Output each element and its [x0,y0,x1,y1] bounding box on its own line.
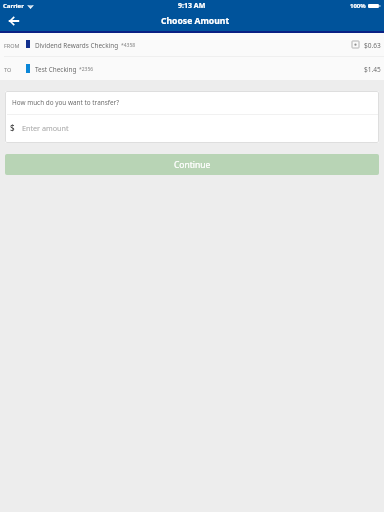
staticText: Enter amount [22,123,69,133]
staticText: $1.45 [364,65,381,74]
staticText: Choose Amount [161,15,230,27]
staticText: *2356 [79,66,94,73]
button[interactable]: $ [5,115,379,143]
staticText: How much do you want to transfer? [12,98,119,107]
staticText: FROM [4,42,20,49]
staticText: $ [10,122,15,133]
button[interactable]: TO [0,57,384,80]
staticText: 100% [350,2,366,10]
staticText: TO [4,66,12,73]
button[interactable]: Continue [5,154,379,175]
staticText: Continue [174,159,211,171]
staticText: 9:13 AM [178,1,206,11]
staticText: $0.63 [364,41,381,50]
staticText: Test Checking [35,65,77,74]
button[interactable]: FROM [0,33,384,56]
staticText: Dividend Rewards Checking [35,41,119,50]
button[interactable]: Back [2,9,26,33]
staticText: *4358 [121,42,136,49]
staticText: Carrier [3,2,24,10]
